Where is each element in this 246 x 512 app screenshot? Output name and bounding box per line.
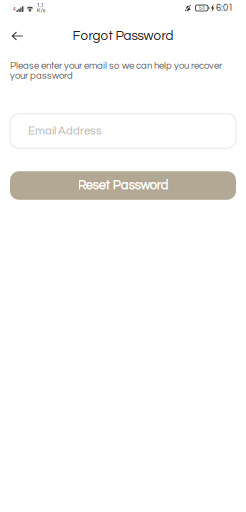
button[interactable]: Reset Password <box>0 171 246 200</box>
staticText: Email Address <box>28 125 102 137</box>
staticText: 4 <box>13 7 16 12</box>
button[interactable]: Back <box>0 21 34 51</box>
staticText: 53 <box>199 5 205 11</box>
staticText: K/s <box>37 8 46 14</box>
staticText: 1.1 <box>37 2 44 8</box>
staticText: Forgot Password <box>72 29 173 43</box>
staticText: Reset Password <box>77 179 168 192</box>
staticText: 6:01 <box>216 3 233 13</box>
staticText: Please enter your email so we can help y… <box>10 61 222 81</box>
